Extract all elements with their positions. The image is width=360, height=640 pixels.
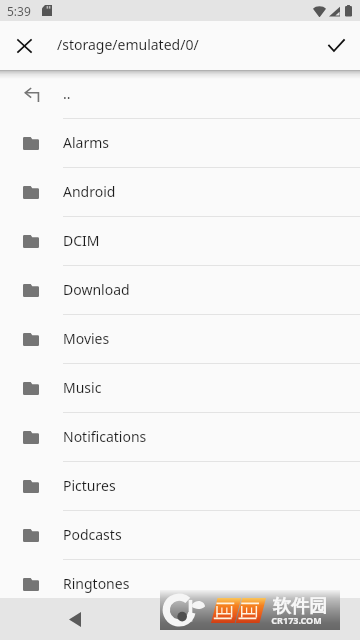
- staticText: Alarms: [63, 133, 109, 152]
- button[interactable]: Pictures: [0, 462, 360, 511]
- staticText: Music: [63, 378, 102, 397]
- staticText: Android: [63, 182, 116, 201]
- staticText: 5:39: [7, 3, 31, 19]
- staticText: 软件园: [273, 595, 327, 618]
- button[interactable]: Notifications: [0, 413, 360, 462]
- button[interactable]: Alarms: [0, 119, 360, 168]
- button[interactable]: Movies: [0, 315, 360, 364]
- button[interactable]: Download: [0, 266, 360, 315]
- staticText: Ringtones: [63, 574, 130, 593]
- button[interactable]: Ringtones: [0, 560, 360, 598]
- button[interactable]: Confirm: [312, 21, 360, 70]
- staticText: Notifications: [63, 427, 147, 446]
- button[interactable]: Android: [0, 168, 360, 217]
- staticText: DCIM: [63, 231, 100, 250]
- staticText: Pictures: [63, 476, 116, 495]
- staticText: /storage/emulated/0/: [57, 35, 199, 54]
- button[interactable]: Back: [51, 598, 99, 640]
- button[interactable]: DCIM: [0, 217, 360, 266]
- staticText: Movies: [63, 329, 110, 348]
- button[interactable]: Music: [0, 364, 360, 413]
- button[interactable]: Close: [0, 21, 48, 70]
- staticText: CR173.COM: [271, 614, 322, 626]
- staticText: Download: [63, 280, 130, 299]
- staticText: ..: [63, 84, 71, 103]
- button[interactable]: Podcasts: [0, 511, 360, 560]
- staticText: Podcasts: [63, 525, 122, 544]
- button[interactable]: ..: [0, 70, 360, 119]
